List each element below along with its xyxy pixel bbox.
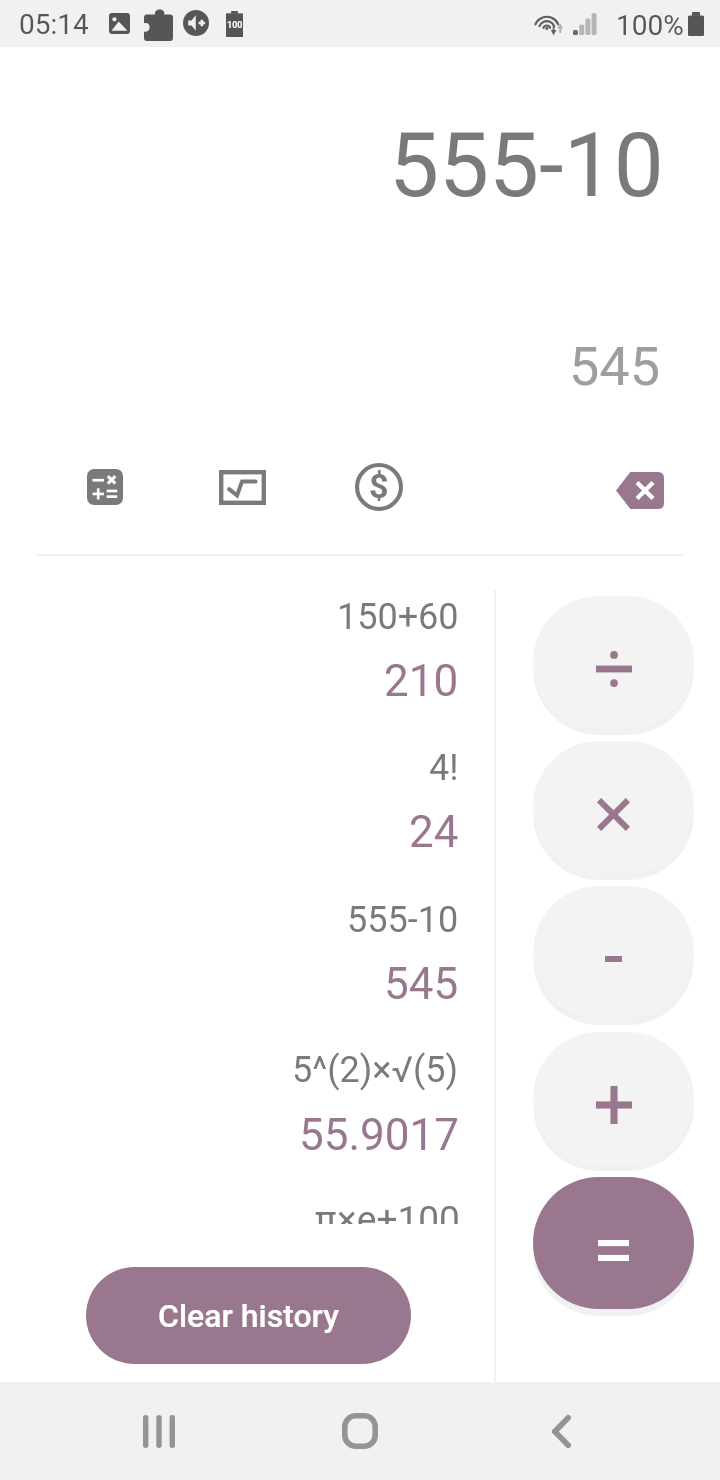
staticText: 210 bbox=[384, 655, 459, 707]
button[interactable]: Backspace bbox=[602, 452, 678, 528]
staticText: 545 bbox=[569, 335, 661, 398]
staticText: 150+60 bbox=[337, 596, 459, 638]
button[interactable]: - bbox=[533, 886, 694, 1018]
button[interactable]: Basic calculator bbox=[67, 449, 143, 525]
button[interactable]: 150+60 bbox=[0, 596, 494, 710]
staticText: π×e+100 bbox=[315, 1198, 460, 1224]
button[interactable]: ÷ bbox=[533, 596, 694, 728]
staticText: 555-10 bbox=[389, 113, 664, 217]
button[interactable]: 5^(2)×√(5) bbox=[0, 1049, 494, 1164]
staticText: 55.9017 bbox=[299, 1109, 459, 1161]
staticText: $ bbox=[369, 466, 389, 506]
button[interactable]: Clear history bbox=[86, 1267, 411, 1364]
button[interactable]: 4! bbox=[0, 747, 494, 861]
button[interactable]: Back bbox=[491, 1382, 631, 1480]
staticText: 05:14 bbox=[19, 8, 89, 41]
staticText: 24 bbox=[409, 806, 459, 858]
button[interactable]: 555-10 bbox=[0, 899, 494, 1013]
staticText: 100 bbox=[227, 20, 243, 31]
button[interactable]: = bbox=[533, 1177, 694, 1309]
staticText: 555-10 bbox=[347, 899, 459, 941]
button[interactable]: × bbox=[533, 741, 694, 873]
button[interactable]: Scientific calculator bbox=[204, 449, 280, 525]
staticText: 100% bbox=[616, 9, 684, 42]
button[interactable]: Recents bbox=[88, 1382, 229, 1480]
button[interactable]: Currency converter bbox=[341, 449, 417, 525]
button[interactable]: + bbox=[533, 1032, 694, 1164]
staticText: 5^(2)×√(5) bbox=[292, 1049, 459, 1091]
staticText: 545 bbox=[384, 958, 459, 1010]
button[interactable]: Home bbox=[290, 1382, 430, 1480]
staticText: Clear history bbox=[158, 1297, 339, 1335]
staticText: 4! bbox=[429, 747, 459, 789]
